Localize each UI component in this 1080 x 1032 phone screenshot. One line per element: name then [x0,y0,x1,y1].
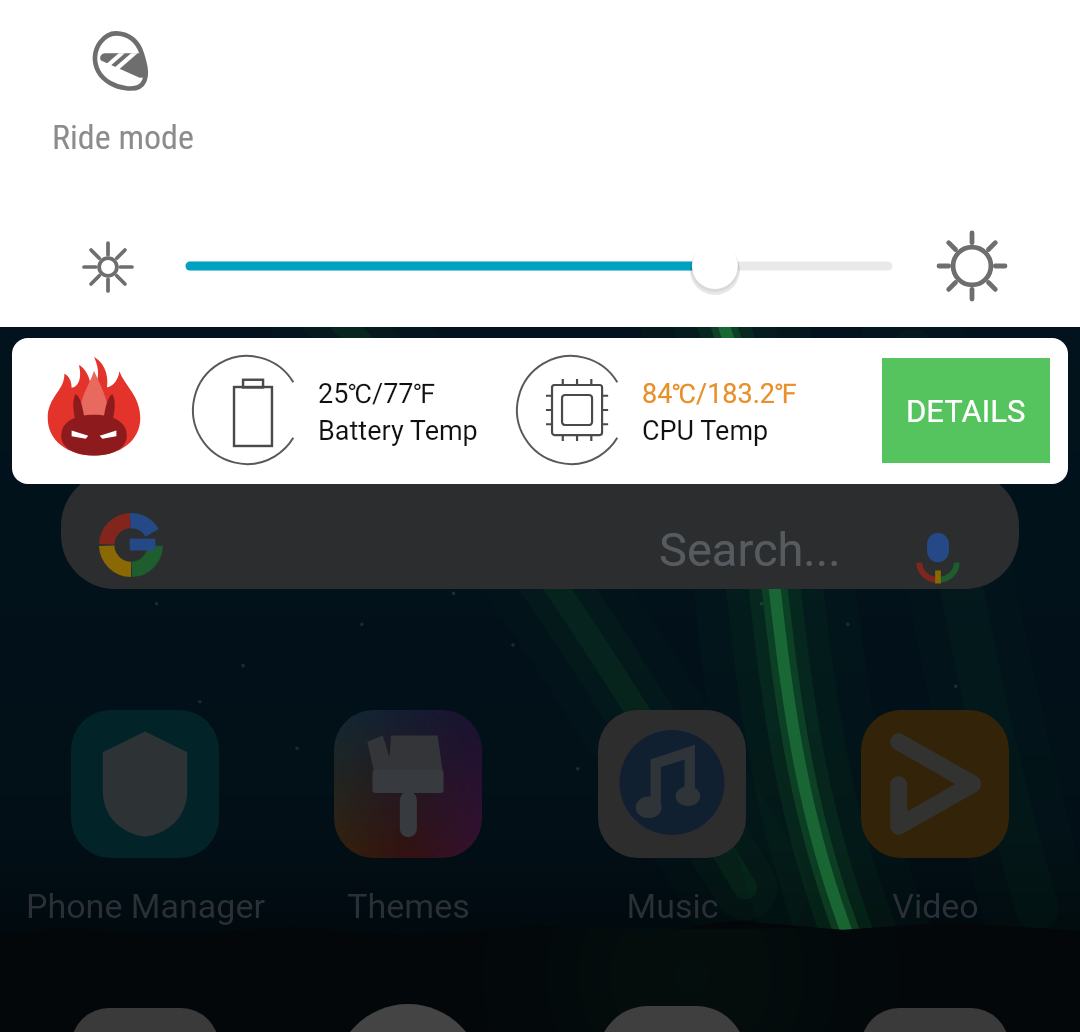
staticText: Ride mode [52,117,194,157]
staticText: DETAILS [906,393,1026,429]
staticText: Themes [347,886,470,926]
button[interactable] [334,1004,482,1032]
button[interactable] [861,1008,1009,1032]
button[interactable]: Video [755,710,1080,926]
button[interactable] [598,1006,746,1032]
button[interactable]: Music [492,710,852,926]
button[interactable]: Themes [228,710,588,926]
button[interactable]: Brightness slider [166,236,912,296]
button[interactable]: Increase brightness [928,222,1016,310]
staticText: 84℃/183.2℉ [642,378,797,410]
staticText: Phone Manager [26,886,265,926]
staticText: Music [626,886,719,926]
button[interactable]: Search... [61,472,1019,589]
button[interactable]: 25℃/77℉ [12,338,1068,484]
staticText: Battery Temp [318,415,478,447]
button[interactable]: Decrease brightness [84,243,132,291]
staticText: 25℃/77℉ [318,378,436,410]
staticText: CPU Temp [642,415,769,447]
button[interactable] [71,1008,219,1032]
staticText: Video [892,886,979,926]
button[interactable]: DETAILS [882,358,1050,463]
button[interactable]: Voice search [912,532,964,584]
button[interactable]: Ride mode [40,12,206,173]
staticText: Search... [659,522,841,577]
button[interactable]: Phone Manager [0,710,325,926]
